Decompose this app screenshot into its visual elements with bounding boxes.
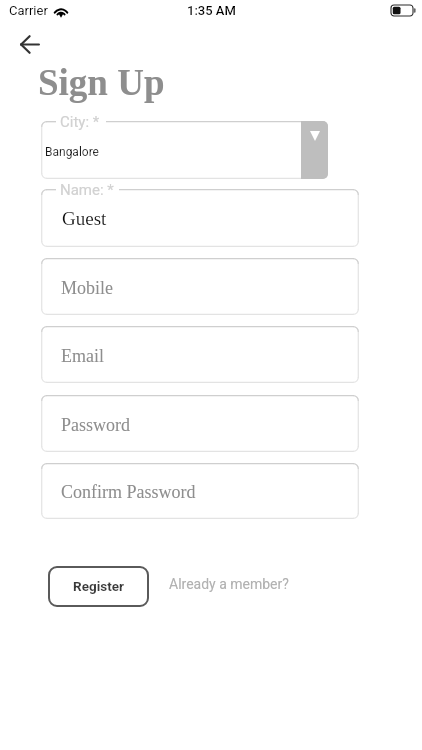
staticText: Mobile — [61, 278, 113, 298]
staticText: City: * — [60, 113, 100, 131]
staticText: Email — [61, 346, 104, 366]
staticText: 1:35 AM — [187, 3, 236, 18]
staticText: Carrier — [9, 3, 48, 18]
button[interactable]: Email — [41, 326, 359, 383]
button[interactable]: Register — [48, 566, 149, 607]
button[interactable]: Mobile — [41, 258, 359, 315]
staticText: Sign Up — [38, 62, 165, 103]
button[interactable]: Password — [41, 395, 359, 452]
button[interactable]: Confirm Password — [41, 463, 359, 519]
staticText: Name: * — [60, 181, 114, 199]
staticText: Password — [61, 415, 131, 435]
button[interactable]: Already a member? — [169, 576, 289, 592]
button[interactable]: Name: * — [41, 189, 359, 247]
staticText: Register — [73, 578, 124, 594]
staticText: Guest — [62, 208, 107, 229]
button[interactable]: City: * — [41, 121, 328, 179]
button[interactable]: Back — [13, 27, 47, 61]
staticText: Bangalore — [45, 145, 99, 159]
staticText: Confirm Password — [61, 482, 196, 502]
button[interactable]: Open city dropdown — [301, 121, 328, 179]
